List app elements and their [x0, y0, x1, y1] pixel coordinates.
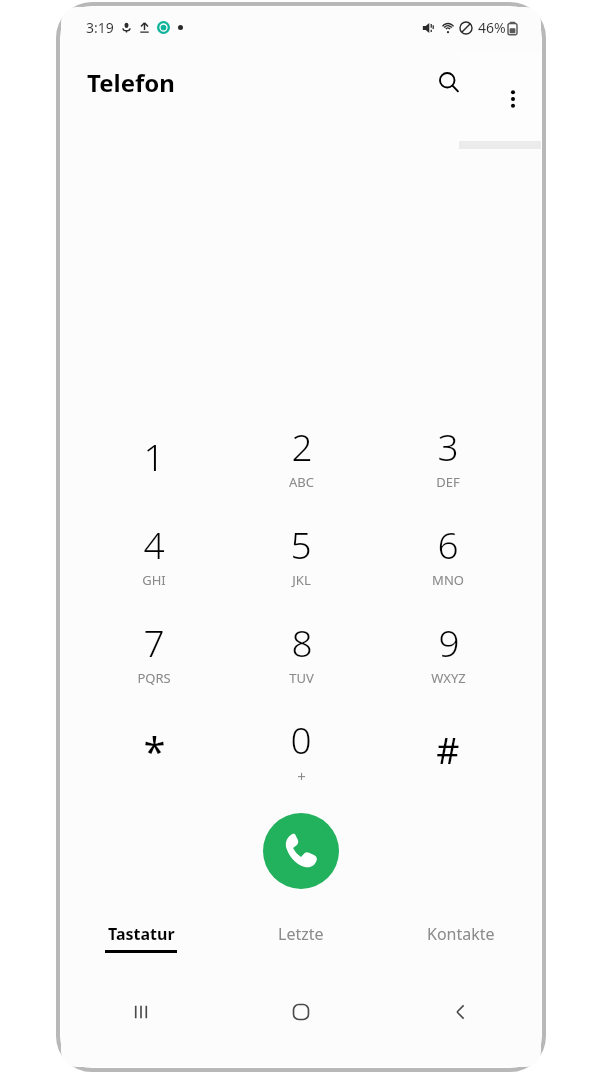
button[interactable]: Tastatur — [61, 923, 221, 971]
staticText: PQRS — [137, 669, 171, 687]
staticText: MNO — [432, 571, 464, 589]
button[interactable]: 3 — [391, 407, 505, 505]
staticText: * — [143, 723, 166, 777]
button[interactable]: * — [97, 701, 211, 799]
staticText: 3:19 — [86, 18, 114, 37]
button[interactable]: # — [391, 701, 505, 799]
button[interactable]: 0 — [244, 701, 358, 799]
staticText: 1 — [143, 431, 165, 481]
staticText: 0 — [290, 714, 312, 764]
button[interactable]: 4 — [97, 505, 211, 603]
button[interactable]: Home — [221, 985, 381, 1039]
staticText: 8 — [291, 617, 313, 667]
staticText: Tastatur — [108, 923, 175, 945]
button[interactable]: 9 — [391, 603, 505, 701]
staticText: ABC — [289, 473, 314, 491]
staticText: DEF — [436, 473, 460, 491]
staticText: 2 — [291, 421, 313, 471]
button[interactable]: 1 — [97, 407, 211, 505]
button[interactable]: Kontakte — [381, 923, 541, 971]
staticText: TUV — [289, 669, 314, 687]
staticText: Telefon — [87, 66, 175, 99]
button[interactable]: 7 — [97, 603, 211, 701]
staticText: 3 — [437, 421, 459, 471]
staticText: 46% — [478, 18, 506, 37]
staticText: Letzte — [278, 923, 324, 945]
button[interactable]: 6 — [391, 505, 505, 603]
staticText: 7 — [143, 617, 165, 667]
staticText: 9 — [438, 617, 460, 667]
button[interactable]: Call — [263, 813, 339, 889]
button[interactable]: Search — [423, 56, 475, 108]
button[interactable]: 5 — [244, 505, 358, 603]
button[interactable]: More options — [485, 71, 541, 127]
staticText: 5 — [290, 519, 312, 569]
staticText: GHI — [142, 571, 166, 589]
button[interactable]: Recent apps — [61, 985, 221, 1039]
staticText: JKL — [292, 571, 311, 589]
staticText: # — [436, 726, 460, 775]
button[interactable]: Letzte — [221, 923, 381, 971]
button[interactable]: Back — [381, 985, 541, 1039]
staticText: 4 — [143, 519, 165, 569]
staticText: WXYZ — [431, 669, 466, 687]
staticText: + — [297, 766, 306, 786]
button[interactable]: 8 — [244, 603, 358, 701]
button[interactable]: 2 — [244, 407, 358, 505]
staticText: 6 — [437, 519, 459, 569]
staticText: Kontakte — [427, 923, 495, 945]
